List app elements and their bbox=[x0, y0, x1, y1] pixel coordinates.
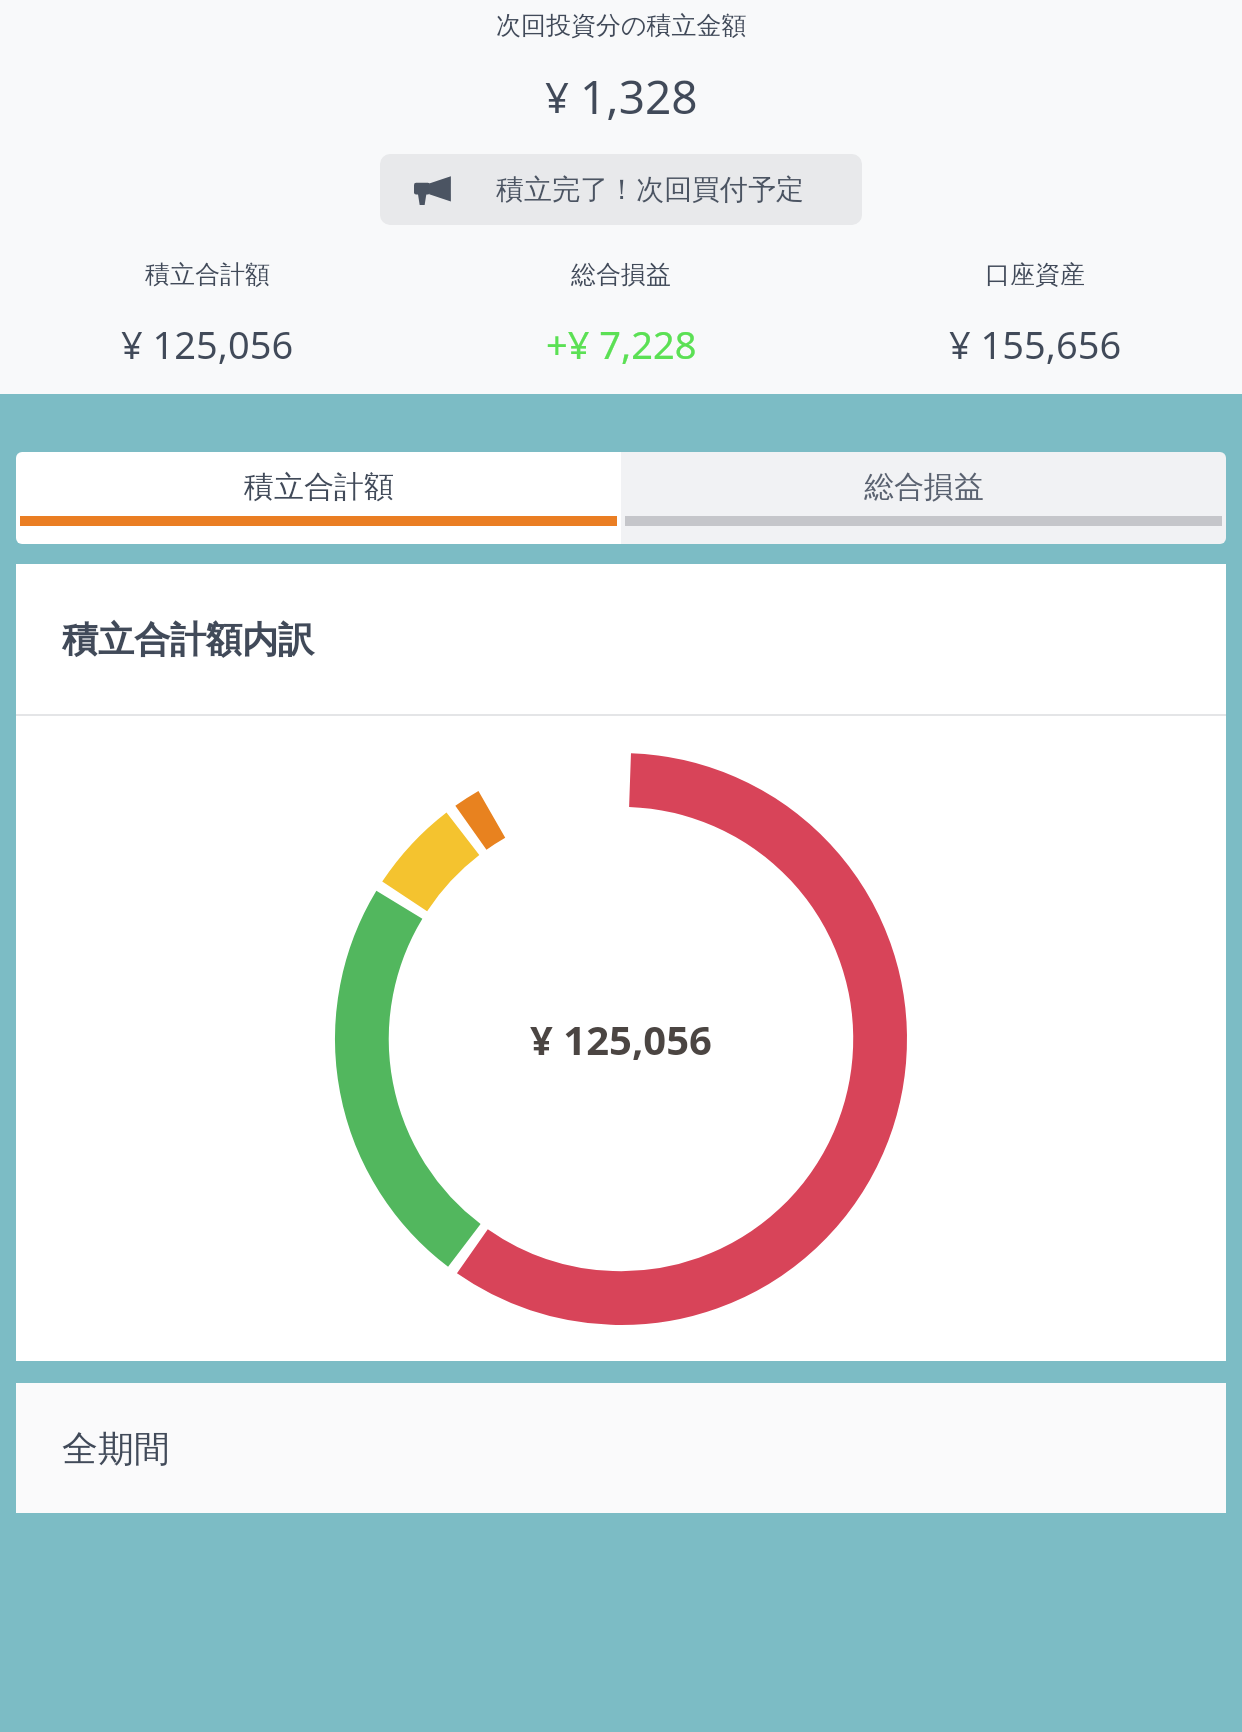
staticText: 積立完了！次回買付予定 bbox=[496, 172, 804, 207]
staticText: ¥ 125,056 bbox=[121, 318, 294, 370]
staticText: +¥ 7,228 bbox=[546, 318, 697, 370]
button[interactable]: お知らせ bbox=[380, 154, 862, 225]
staticText: 総合損益 bbox=[864, 468, 984, 506]
button[interactable]: 総合損益 bbox=[621, 452, 1226, 544]
staticText: 積立合計額内訳 bbox=[62, 617, 314, 662]
staticText: 積立合計額 bbox=[145, 259, 270, 290]
staticText: ¥ bbox=[545, 68, 570, 125]
button[interactable]: 積立合計額 bbox=[16, 452, 621, 544]
staticText: 口座資産 bbox=[985, 259, 1085, 290]
other: お知らせ bbox=[414, 175, 452, 205]
staticText: 1,328 bbox=[580, 65, 698, 128]
button[interactable]: 全期間 bbox=[16, 1383, 1226, 1513]
staticText: 全期間 bbox=[62, 1426, 170, 1471]
staticText: 次回投資分の積立金額 bbox=[496, 10, 747, 41]
staticText: ¥ 125,056 bbox=[530, 1012, 712, 1066]
staticText: ¥ 155,656 bbox=[949, 318, 1122, 370]
staticText: 積立合計額 bbox=[244, 468, 394, 506]
staticText: 総合損益 bbox=[571, 259, 671, 290]
